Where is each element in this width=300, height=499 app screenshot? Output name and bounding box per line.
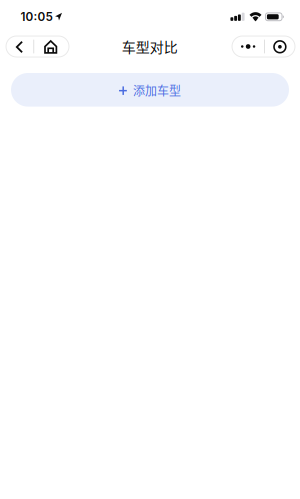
button[interactable]: 添加车型	[11, 73, 289, 107]
button[interactable]: Back and home	[6, 36, 69, 57]
staticText: 10:05	[20, 10, 52, 24]
staticText: 添加车型	[133, 81, 181, 99]
button[interactable]: More options	[232, 36, 295, 57]
staticText: 车型对比	[122, 36, 178, 57]
